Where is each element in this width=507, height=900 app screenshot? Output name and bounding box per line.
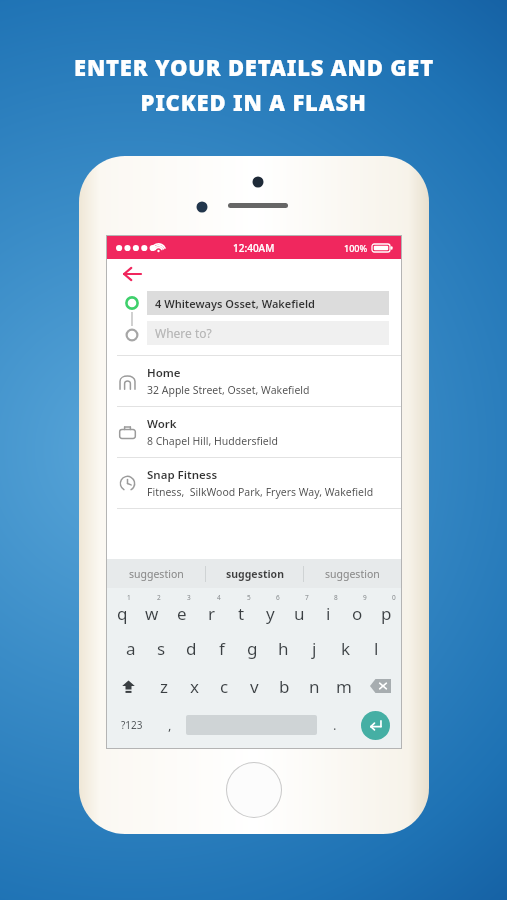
button[interactable]: Home <box>107 356 401 406</box>
staticText: suggestion <box>226 567 284 581</box>
staticText: Snap Fitness <box>147 467 218 483</box>
button[interactable]: n <box>299 667 329 705</box>
button[interactable]: l <box>361 629 392 667</box>
button[interactable]: suggestion <box>107 559 205 588</box>
button[interactable]: 2 <box>137 591 167 629</box>
staticText: c <box>220 675 229 698</box>
staticText: . <box>333 716 337 734</box>
staticText: j <box>312 637 317 660</box>
staticText: suggestion <box>325 567 380 581</box>
staticText: e <box>177 602 187 625</box>
staticText: ?123 <box>121 718 143 732</box>
staticText: 4 <box>217 593 221 602</box>
staticText: 7 <box>305 593 309 602</box>
button[interactable]: j <box>299 629 330 667</box>
staticText: PICKED IN A FLASH <box>140 87 367 117</box>
button[interactable]: b <box>269 667 299 705</box>
button[interactable]: c <box>209 667 239 705</box>
staticText: o <box>352 602 363 625</box>
staticText: f <box>219 637 225 660</box>
staticText: a <box>126 637 136 660</box>
button[interactable]: Enter <box>361 711 390 740</box>
button[interactable]: z <box>149 667 179 705</box>
staticText: suggestion <box>129 567 184 581</box>
staticText: , <box>168 716 172 734</box>
staticText: l <box>374 637 379 660</box>
staticText: p <box>381 602 392 625</box>
button[interactable]: g <box>237 629 268 667</box>
staticText: ENTER YOUR DETAILS AND GET <box>74 52 434 82</box>
button[interactable]: suggestion <box>206 559 303 588</box>
staticText: z <box>160 675 168 698</box>
staticText: i <box>326 602 331 625</box>
button[interactable]: d <box>176 629 206 667</box>
staticText: t <box>238 602 245 625</box>
button[interactable]: Back <box>118 260 146 288</box>
button[interactable]: ?123 <box>107 705 157 745</box>
staticText: s <box>157 637 166 660</box>
button[interactable]: 5 <box>227 591 256 629</box>
staticText: 32 Apple Street, Osset, Wakefield <box>147 383 310 397</box>
button[interactable]: . <box>320 705 349 745</box>
button[interactable]: 9 <box>343 591 372 629</box>
staticText: 5 <box>247 593 251 602</box>
button[interactable]: 6 <box>256 591 285 629</box>
button[interactable]: suggestion <box>304 559 401 588</box>
staticText: u <box>294 602 305 625</box>
button[interactable]: s <box>146 629 176 667</box>
button[interactable]: k <box>330 629 361 667</box>
staticText: 9 <box>363 593 367 602</box>
staticText: y <box>266 602 275 625</box>
staticText: d <box>186 637 197 660</box>
staticText: 0 <box>392 593 396 602</box>
staticText: 3 <box>187 593 191 602</box>
staticText: q <box>117 602 128 625</box>
button[interactable]: Home <box>227 763 281 817</box>
button[interactable]: Where to? <box>147 321 389 345</box>
staticText: Home <box>147 365 181 381</box>
button[interactable]: , <box>157 705 183 745</box>
button[interactable]: a <box>116 629 146 667</box>
staticText: b <box>279 675 290 698</box>
staticText: g <box>247 637 258 660</box>
staticText: 8 Chapel Hill, Huddersfield <box>147 434 278 448</box>
staticText: h <box>278 637 289 660</box>
staticText: m <box>336 675 352 698</box>
button[interactable]: m <box>329 667 359 705</box>
button[interactable]: v <box>239 667 269 705</box>
button[interactable]: Work <box>107 407 401 457</box>
staticText: 6 <box>276 593 280 602</box>
button[interactable]: 3 <box>167 591 197 629</box>
button[interactable]: x <box>179 667 209 705</box>
staticText: 2 <box>157 593 161 602</box>
staticText: x <box>190 675 199 698</box>
staticText: 12:40AM <box>233 241 275 255</box>
button[interactable]: f <box>206 629 237 667</box>
button[interactable]: h <box>268 629 299 667</box>
staticText: w <box>145 602 159 625</box>
button[interactable]: 7 <box>285 591 314 629</box>
staticText: 4 Whiteways Osset, Wakefield <box>155 296 315 311</box>
staticText: n <box>309 675 320 698</box>
button[interactable]: 1 <box>107 591 137 629</box>
button[interactable]: 4 <box>197 591 227 629</box>
staticText: r <box>208 602 216 625</box>
staticText: Fitness, SilkWood Park, Fryers Way, Wake… <box>147 485 374 499</box>
staticText: 8 <box>334 593 338 602</box>
button[interactable]: 8 <box>314 591 343 629</box>
button[interactable]: Snap Fitness <box>107 458 401 508</box>
staticText: Work <box>147 416 177 432</box>
button[interactable]: Shift <box>107 667 149 705</box>
staticText: 100% <box>344 242 368 254</box>
staticText: 1 <box>127 593 131 602</box>
staticText: v <box>250 675 259 698</box>
staticText: Where to? <box>155 325 212 341</box>
button[interactable]: 0 <box>372 591 401 629</box>
button[interactable]: Backspace <box>359 667 401 705</box>
button[interactable]: 4 Whiteways Osset, Wakefield <box>147 291 389 315</box>
staticText: k <box>341 637 351 660</box>
